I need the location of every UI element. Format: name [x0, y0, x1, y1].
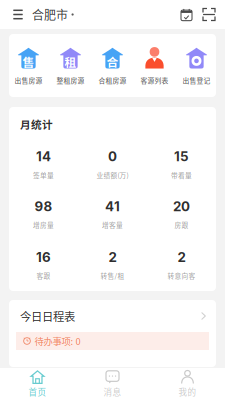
staticText: 14	[36, 148, 51, 164]
staticText: 消息	[103, 386, 121, 398]
staticText: 首页	[28, 386, 46, 398]
staticText: 41	[105, 198, 120, 214]
staticText: 售	[22, 53, 34, 70]
staticText: 合肥市	[32, 6, 68, 23]
button[interactable]: 今日日程表	[9, 300, 216, 332]
button[interactable]: 合肥市	[29, 0, 77, 29]
staticText: 转意向客	[167, 271, 195, 280]
button[interactable]: 首页	[0, 368, 75, 400]
button[interactable]: 售	[7, 34, 49, 97]
staticText: 带看量	[171, 170, 192, 180]
staticText: 客跟	[36, 271, 50, 280]
staticText: 客源列表	[140, 75, 168, 85]
button[interactable]: 客源列表	[133, 34, 175, 97]
button[interactable]: 扫一扫	[198, 0, 220, 29]
staticText: 我的	[178, 386, 196, 398]
staticText: 0	[108, 148, 117, 164]
button[interactable]: 出售登记	[175, 34, 217, 97]
staticText: 增房量	[33, 220, 54, 230]
staticText: 房跟	[174, 220, 188, 230]
staticText: 今日日程表	[20, 308, 75, 324]
staticText: 16	[36, 249, 51, 265]
staticText: 15	[174, 148, 189, 164]
button[interactable]: 合	[91, 34, 133, 97]
staticText: 增客量	[102, 220, 123, 230]
button[interactable]: 消息	[75, 368, 150, 400]
staticText: 整租房源	[56, 75, 84, 85]
staticText: 出售登记	[182, 75, 210, 85]
staticText: 待办事项: 0	[34, 334, 80, 348]
staticText: 合	[106, 53, 118, 70]
staticText: 合租房源	[98, 75, 126, 85]
button[interactable]: 租	[49, 34, 91, 97]
staticText: 2	[108, 249, 116, 265]
button[interactable]: 菜单	[7, 0, 29, 29]
button[interactable]: 我的	[150, 368, 225, 400]
staticText: 2	[177, 249, 185, 265]
staticText: 20	[173, 198, 190, 214]
staticText: 98	[34, 198, 52, 214]
staticText: 出售房源	[14, 75, 42, 85]
staticText: 签单量	[33, 170, 54, 180]
staticText: 租	[64, 53, 76, 70]
staticText: 业绩额(万)	[96, 170, 128, 180]
staticText: 转售/租	[100, 271, 124, 280]
button[interactable]: 日程	[175, 0, 198, 29]
staticText: 月统计	[20, 116, 53, 132]
